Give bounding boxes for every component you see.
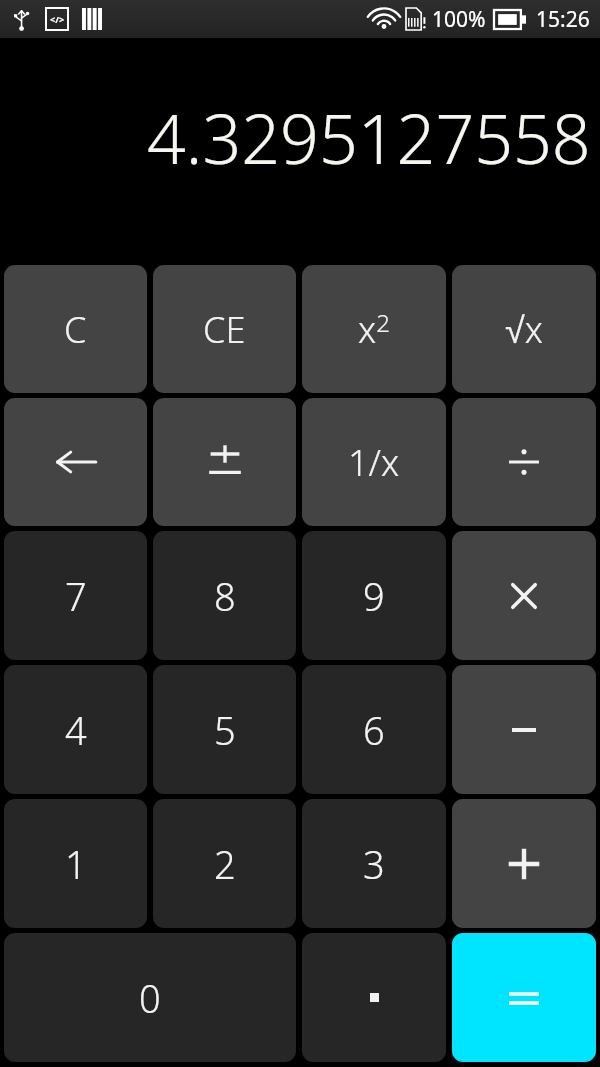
button[interactable]: 2	[153, 799, 296, 928]
button[interactable]: 1/x	[302, 398, 446, 526]
button[interactable]: 0	[4, 933, 296, 1062]
button[interactable]: Backspace	[4, 398, 147, 526]
staticText: √x	[505, 305, 543, 354]
button[interactable]: Multiply	[452, 531, 596, 660]
staticText: 1/x	[348, 438, 400, 487]
button[interactable]: Equals	[452, 933, 596, 1062]
staticText: x2	[358, 305, 390, 354]
button[interactable]: 9	[302, 531, 446, 660]
button[interactable]: x squared	[302, 265, 446, 393]
button[interactable]: C	[4, 265, 147, 393]
button[interactable]: Decimal point	[302, 933, 446, 1062]
button[interactable]: 5	[153, 665, 296, 794]
button[interactable]: √x	[452, 265, 596, 393]
staticText: 6	[363, 704, 385, 756]
staticText: 5	[214, 704, 236, 756]
staticText: 1	[65, 838, 87, 890]
button[interactable]: 3	[302, 799, 446, 928]
staticText: 0	[139, 972, 161, 1024]
button[interactable]: Divide	[452, 398, 596, 526]
staticText: 3	[363, 838, 385, 890]
staticText: 15:26	[536, 5, 590, 34]
button[interactable]: 8	[153, 531, 296, 660]
button[interactable]: Subtract	[452, 665, 596, 794]
staticText: 4.3295127558	[147, 91, 591, 184]
button[interactable]: CE	[153, 265, 296, 393]
button[interactable]: 7	[4, 531, 147, 660]
staticText: 9	[363, 570, 385, 622]
button[interactable]: 1	[4, 799, 147, 928]
staticText: 4	[65, 704, 87, 756]
button[interactable]: 6	[302, 665, 446, 794]
button[interactable]: Add	[452, 799, 596, 928]
staticText: C	[64, 305, 87, 354]
staticText: CE	[203, 305, 246, 354]
staticText: 2	[214, 838, 236, 890]
staticText: 7	[65, 570, 87, 622]
button[interactable]: Plus minus sign	[153, 398, 296, 526]
staticText: 100%	[432, 5, 486, 34]
staticText: 8	[214, 570, 236, 622]
staticText: </>	[50, 13, 65, 25]
button[interactable]: 4	[4, 665, 147, 794]
